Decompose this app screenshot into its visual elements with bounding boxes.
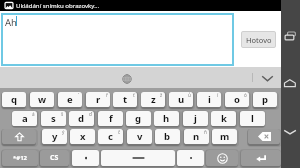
button[interactable]: Ah <box>1 13 234 66</box>
staticText: ž <box>160 92 163 98</box>
button[interactable]: r <box>86 92 110 107</box>
staticText: h <box>163 112 170 125</box>
staticText: f <box>109 112 113 125</box>
button[interactable]: Shift <box>2 129 36 144</box>
staticText: m <box>220 130 230 143</box>
button[interactable]: Space <box>101 150 175 166</box>
button[interactable]: w <box>30 92 54 107</box>
button[interactable]: Emoji <box>206 150 238 166</box>
staticText: c <box>108 130 113 143</box>
button[interactable]: Recents <box>281 28 300 42</box>
button[interactable]: d <box>69 111 94 126</box>
button[interactable]: h <box>154 111 179 126</box>
button[interactable]: Backspace <box>248 129 280 144</box>
button[interactable]: c <box>98 129 123 144</box>
staticText: ý <box>62 129 65 135</box>
staticText: ů <box>188 92 191 98</box>
button[interactable]: z <box>141 92 165 107</box>
button[interactable]: f <box>98 111 123 126</box>
button[interactable]: Language <box>40 150 69 166</box>
button[interactable]: n <box>184 129 209 144</box>
staticText: t <box>123 93 128 106</box>
staticText: a <box>22 112 28 125</box>
staticText: l <box>251 112 254 125</box>
button[interactable]: Comma <box>72 150 99 166</box>
button[interactable]: s <box>41 111 66 126</box>
staticText: d <box>78 112 85 125</box>
staticText: ´ <box>78 92 80 98</box>
staticText: Ah <box>5 16 17 29</box>
staticText: s <box>51 112 56 125</box>
staticText: ť <box>133 92 135 98</box>
button[interactable]: l <box>240 111 265 126</box>
staticText: á <box>32 111 35 117</box>
button[interactable]: i <box>197 92 221 107</box>
staticText: j <box>194 112 197 125</box>
staticText: í <box>217 92 219 98</box>
button[interactable]: p <box>253 92 277 107</box>
staticText: ř <box>106 92 108 98</box>
button[interactable]: u <box>169 92 193 107</box>
button[interactable]: x <box>70 129 95 144</box>
button[interactable]: Hotovo <box>241 31 276 48</box>
button[interactable]: a <box>12 111 37 126</box>
button[interactable]: k <box>211 111 236 126</box>
button[interactable]: y <box>42 129 67 144</box>
button[interactable]: Symbols <box>2 150 38 166</box>
staticText: p <box>262 93 269 106</box>
staticText: v <box>137 130 143 143</box>
staticText: n <box>193 130 200 143</box>
staticText: i <box>208 93 211 106</box>
button[interactable]: Hide keyboard <box>261 74 274 83</box>
staticText: b <box>164 130 171 143</box>
button[interactable]: o <box>225 92 249 107</box>
staticText: ó <box>244 92 247 98</box>
staticText: *#12 <box>13 154 27 162</box>
button[interactable]: q <box>2 92 26 107</box>
staticText: z <box>151 93 156 106</box>
button[interactable]: Enter <box>241 150 281 166</box>
staticText: o <box>234 93 240 106</box>
button[interactable]: m <box>212 129 237 144</box>
button[interactable]: e <box>58 92 82 107</box>
staticText: ď <box>89 111 92 117</box>
button[interactable]: Period <box>177 150 204 166</box>
staticText: Hotovo <box>246 35 272 45</box>
staticText: g <box>135 112 142 125</box>
staticText: k <box>221 112 227 125</box>
button[interactable]: g <box>126 111 151 126</box>
button[interactable]: Home <box>281 78 300 90</box>
staticText: š <box>61 111 64 117</box>
staticText: u <box>178 93 185 106</box>
staticText: y <box>52 130 58 143</box>
button[interactable]: t <box>113 92 137 107</box>
staticText: e <box>67 93 73 106</box>
staticText: CS <box>50 153 59 163</box>
button[interactable]: b <box>155 129 180 144</box>
staticText: ň <box>204 129 207 135</box>
button[interactable]: Change language <box>122 74 132 84</box>
staticText: č <box>118 129 121 135</box>
button[interactable]: v <box>127 129 152 144</box>
button[interactable]: j <box>183 111 208 126</box>
staticText: r <box>96 93 101 106</box>
staticText: q <box>11 93 18 106</box>
staticText: w <box>38 93 47 106</box>
button[interactable]: Back <box>281 127 300 137</box>
staticText: x <box>80 130 86 143</box>
staticText: Ukládání snímku obrazovky... <box>16 1 100 9</box>
